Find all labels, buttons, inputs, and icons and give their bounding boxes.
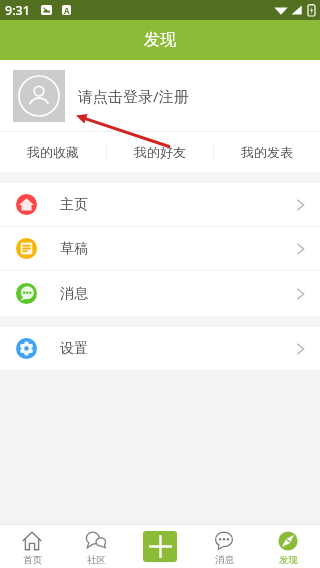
staticText: 发现 <box>279 554 298 566</box>
staticText: 草稿 <box>60 240 88 258</box>
button[interactable]: 我的收藏 <box>0 131 106 172</box>
button[interactable]: 首页 <box>0 524 64 568</box>
button[interactable]: 主页 <box>0 183 320 226</box>
button[interactable]: 我的发表 <box>213 131 320 172</box>
staticText: 主页 <box>60 196 88 214</box>
button[interactable]: 社区 <box>64 524 128 568</box>
staticText: 社区 <box>87 554 106 566</box>
button[interactable]: 消息 <box>192 524 256 568</box>
staticText: 消息 <box>60 285 88 303</box>
staticText: 设置 <box>60 340 88 358</box>
staticText: 9:31 <box>5 2 30 19</box>
staticText: 请点击登录/注册 <box>78 86 189 106</box>
staticText: 首页 <box>23 554 42 566</box>
button[interactable]: 请点击登录/注册 <box>0 60 320 131</box>
staticText: A <box>64 5 70 15</box>
staticText: 我的收藏 <box>27 144 79 160</box>
staticText: 发现 <box>144 30 176 50</box>
staticText: 我的发表 <box>241 144 293 160</box>
staticText: 我的好友 <box>134 144 186 160</box>
button[interactable]: 草稿 <box>0 227 320 270</box>
staticText: 消息 <box>215 554 234 566</box>
button[interactable]: 我的好友 <box>106 131 213 172</box>
button[interactable]: 设置 <box>0 327 320 370</box>
button[interactable]: Add new post <box>128 524 192 568</box>
button[interactable]: 发现 <box>256 524 320 568</box>
button[interactable]: 消息 <box>0 271 320 316</box>
